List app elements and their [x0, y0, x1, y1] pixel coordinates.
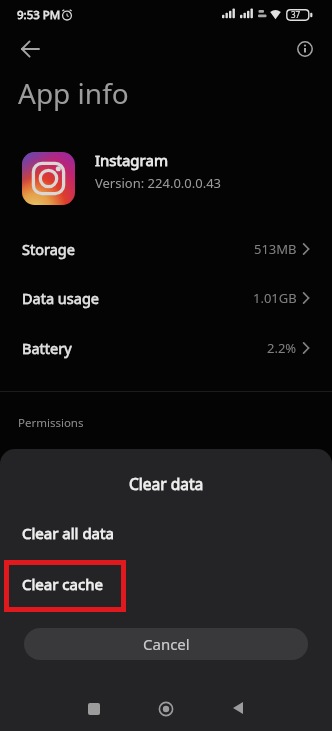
staticText: Storage: [22, 239, 75, 259]
staticText: Version: 224.0.0.0.43: [95, 174, 222, 192]
button[interactable]: Data usage: [0, 273, 332, 323]
staticText: Clear cache: [22, 574, 103, 594]
staticText: Clear data: [129, 473, 204, 494]
staticText: Permissions: [18, 415, 84, 431]
button[interactable]: [157, 700, 175, 718]
staticText: Cancel: [143, 634, 190, 654]
staticText: App info: [18, 74, 129, 112]
staticText: Instagram: [95, 150, 168, 170]
staticText: 37: [291, 9, 301, 20]
button[interactable]: [12, 32, 48, 66]
staticText: 9:53 PM: [17, 7, 61, 23]
staticText: 1.01GB: [253, 289, 297, 307]
button[interactable]: Battery: [0, 323, 332, 373]
button[interactable]: [287, 32, 323, 66]
button[interactable]: Clear cache: [0, 562, 332, 606]
button[interactable]: Clear all data: [0, 511, 332, 555]
staticText: Clear all data: [22, 523, 114, 543]
staticText: 513MB: [254, 240, 297, 258]
button[interactable]: Storage: [0, 224, 332, 274]
staticText: 2.2%: [267, 339, 297, 357]
staticText: Data usage: [22, 288, 99, 308]
button[interactable]: [231, 701, 245, 715]
button[interactable]: [88, 703, 100, 715]
button[interactable]: Cancel: [24, 628, 308, 660]
staticText: Battery: [22, 338, 72, 358]
